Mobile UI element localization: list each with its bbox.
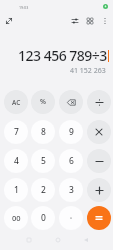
button[interactable]: More options — [98, 14, 111, 27]
button[interactable]: 2 — [31, 178, 55, 202]
button[interactable]: Minus — [87, 149, 111, 173]
staticText: 123 456 789÷3 — [18, 46, 107, 65]
button[interactable]: 8 — [31, 120, 55, 144]
button[interactable]: Plus — [87, 178, 111, 202]
button[interactable]: Decimal point — [59, 206, 83, 230]
button[interactable]: Home — [51, 233, 64, 246]
staticText: 9 — [69, 126, 74, 138]
button[interactable]: Expand calculator — [2, 14, 15, 27]
button[interactable]: 9 — [59, 120, 83, 144]
staticText: 2 — [41, 184, 46, 196]
staticText: 1 — [14, 184, 19, 196]
button[interactable]: Back — [79, 233, 92, 246]
button[interactable]: 3 — [59, 178, 83, 202]
staticText: 00 — [12, 213, 21, 223]
button[interactable]: Divide — [87, 90, 111, 114]
staticText: 6 — [69, 155, 74, 167]
staticText: AC — [12, 98, 21, 107]
button[interactable]: Scientific keypad — [83, 14, 96, 27]
staticText: 3 — [69, 184, 74, 196]
button[interactable]: Multiply — [87, 120, 111, 144]
staticText: 7 — [14, 126, 19, 138]
staticText: 19:03 — [19, 5, 29, 10]
button[interactable]: Unit converter — [68, 14, 81, 27]
staticText: 4 — [14, 155, 19, 167]
staticText: 8 — [41, 126, 46, 138]
button[interactable]: 4 — [4, 149, 28, 173]
staticText: % — [40, 97, 46, 107]
button[interactable]: Recent apps — [22, 233, 35, 246]
button[interactable]: 1 — [4, 178, 28, 202]
button[interactable]: Backspace — [59, 90, 83, 114]
staticText: 0 — [41, 212, 46, 224]
staticText: 5 — [41, 155, 46, 167]
button[interactable]: % — [31, 90, 55, 114]
button[interactable]: AC — [4, 90, 28, 114]
button[interactable]: 0 — [31, 206, 55, 230]
button[interactable]: 5 — [31, 149, 55, 173]
button[interactable]: 00 — [4, 206, 28, 230]
button[interactable]: 7 — [4, 120, 28, 144]
button[interactable]: Equals — [87, 206, 111, 230]
staticText: 41 152 263 — [70, 66, 106, 76]
button[interactable]: 6 — [59, 149, 83, 173]
